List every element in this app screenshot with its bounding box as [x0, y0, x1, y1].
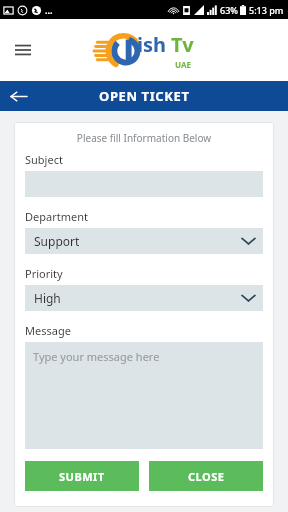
staticText: ... [45, 4, 53, 16]
button[interactable]: Support [25, 228, 263, 254]
staticText: Type your message here [33, 349, 160, 364]
staticText: Please fill Information Below [25, 131, 263, 145]
staticText: 5:13 pm [249, 4, 284, 16]
staticText: ish [137, 31, 167, 58]
staticText: High [34, 290, 61, 306]
staticText: SUBMIT [59, 469, 105, 484]
staticText: Support [34, 233, 80, 249]
staticText: OPEN TICKET [99, 87, 190, 105]
button[interactable]: Menu [8, 35, 38, 65]
button[interactable]: Type your message here [25, 342, 263, 449]
button[interactable]: CLOSE [149, 461, 263, 491]
staticText: CLOSE [188, 469, 225, 484]
staticText: Message [25, 323, 71, 338]
staticText: UAE [175, 59, 191, 70]
staticText: Priority [25, 266, 63, 281]
staticText: Department [25, 209, 88, 224]
button[interactable]: Back [5, 83, 31, 109]
button[interactable]: High [25, 285, 263, 311]
staticText: 63% [220, 4, 238, 16]
staticText: Tv [171, 31, 194, 58]
button[interactable]: SUBMIT [25, 461, 139, 491]
staticText: Subject [25, 152, 63, 167]
